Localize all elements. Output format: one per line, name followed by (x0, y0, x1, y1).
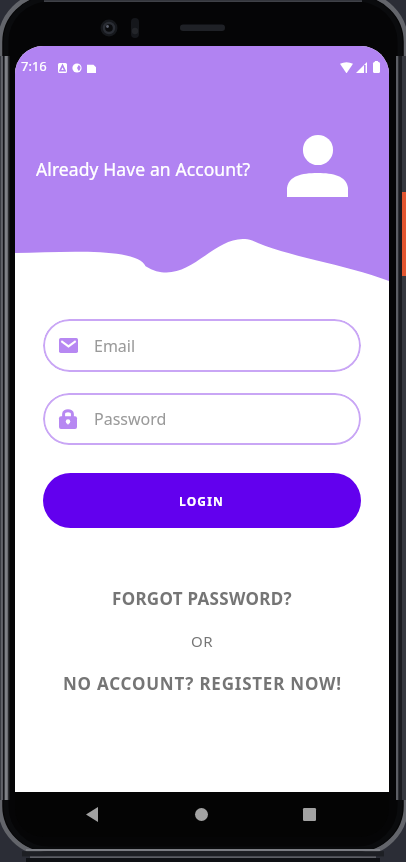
button[interactable]: Email (43, 319, 361, 372)
button[interactable]: Home (165, 792, 237, 837)
staticText: Email (94, 335, 136, 357)
staticText: OR (191, 631, 214, 651)
staticText: 7:16 (21, 57, 47, 75)
button[interactable]: Password (43, 393, 361, 445)
button[interactable]: NO ACCOUNT? REGISTER NOW! (15, 668, 389, 698)
button[interactable]: Back (56, 792, 128, 837)
staticText: NO ACCOUNT? REGISTER NOW! (63, 672, 342, 695)
button[interactable]: LOGIN (43, 473, 361, 528)
staticText: LOGIN (179, 493, 225, 509)
staticText: FORGOT PASSWORD? (112, 587, 292, 610)
staticText: Already Have an Account? (36, 157, 251, 181)
button[interactable]: FORGOT PASSWORD? (15, 583, 389, 613)
staticText: Password (94, 408, 167, 430)
button[interactable]: Recent apps (273, 792, 345, 837)
